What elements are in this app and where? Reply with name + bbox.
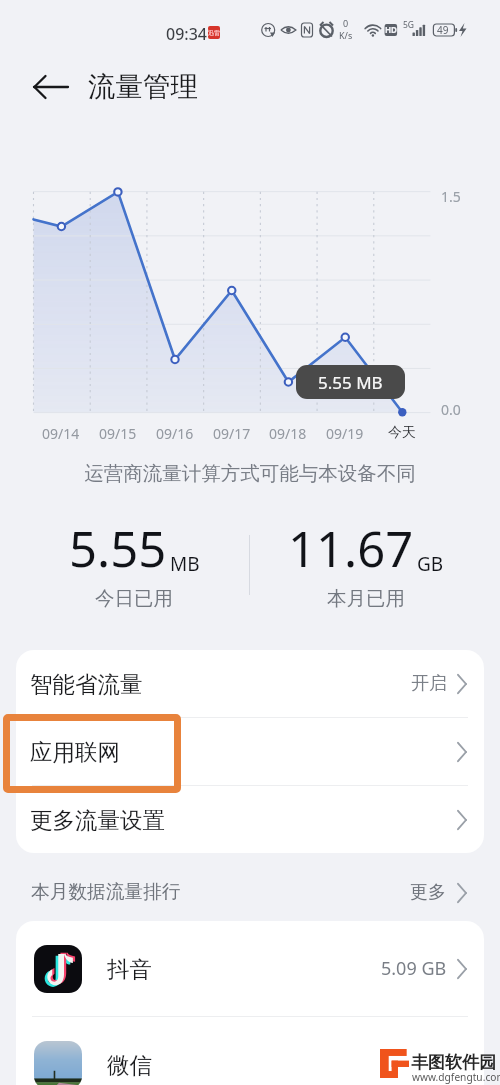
staticText: 0.0 [441,400,461,419]
staticText: 5.55 MB [318,371,383,394]
staticText: 本月数据流量排行 [31,880,181,904]
staticText: 流量管理 [88,70,198,105]
staticText: K/s [339,29,353,41]
staticText: 49 [437,23,449,37]
staticText: MB [170,551,200,577]
staticText: 09/15 [99,424,137,443]
staticText: 09/14 [42,424,80,443]
staticText: 09/16 [156,424,194,443]
staticText: 09:34 [166,23,207,45]
button[interactable]: 应用联网 [16,718,484,785]
staticText: 丰图软件园 [411,1052,496,1073]
staticText: 本月已用 [327,586,405,611]
staticText: www.dgfengtu.com [412,1070,500,1084]
staticText: 今日已用 [95,586,173,611]
staticText: 5G [403,19,415,31]
staticText: 运营商流量计算方式可能与本设备不同 [0,461,500,486]
staticText: 更多 [410,881,446,904]
button[interactable]: 智能省流量 [16,650,484,717]
staticText: HD [385,24,397,35]
button[interactable]: 微信 [16,1017,484,1085]
staticText: 0 [343,17,349,29]
staticText: GB [417,551,444,577]
staticText: 09/17 [213,424,251,443]
staticText: 应用联网 [30,738,120,766]
staticText: 09/18 [269,424,307,443]
staticText: 更多流量设置 [30,806,165,834]
staticText: 微信 [107,1051,152,1079]
button[interactable]: 抖音 [16,921,484,1016]
staticText: 1.5 [441,187,461,206]
staticText: 09/19 [326,424,364,443]
button[interactable]: 更多流量设置 [16,786,484,853]
staticText: 今天 [388,424,416,442]
staticText: 迅雷 [208,29,220,37]
staticText: 抖音 [107,955,152,983]
staticText: 5.55 [69,515,167,582]
button[interactable]: 更多 [410,881,468,904]
button[interactable]: Back [27,63,75,111]
staticText: 开启 [411,672,447,695]
staticText: 5.09 GB [381,956,447,981]
staticText: 11.67 [288,515,414,582]
staticText: 智能省流量 [30,670,143,698]
